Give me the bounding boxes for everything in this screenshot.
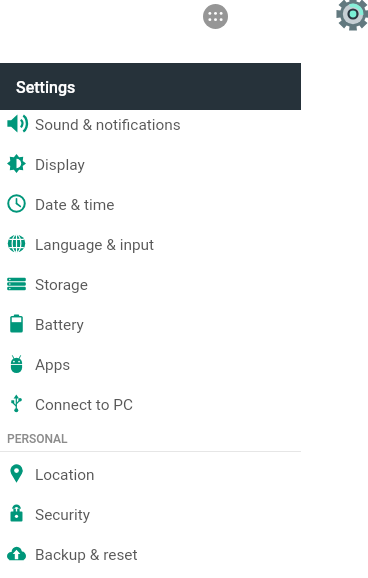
button[interactable]: Sound & notifications (0, 103, 301, 143)
staticText: Backup & reset (35, 546, 138, 564)
button[interactable]: Security (0, 493, 301, 533)
button[interactable]: Storage (0, 263, 301, 303)
staticText: Battery (35, 316, 84, 334)
button[interactable]: Apps (203, 4, 228, 29)
staticText: Settings (16, 78, 76, 97)
staticText: Storage (35, 276, 88, 294)
button[interactable]: Settings (336, 0, 368, 31)
staticText: Security (35, 506, 91, 524)
staticText: Display (35, 156, 85, 174)
button[interactable]: Location (0, 453, 301, 493)
staticText: Location (35, 466, 95, 484)
staticText: Connect to PC (35, 396, 134, 414)
button[interactable]: Apps (0, 343, 301, 383)
button[interactable]: Display (0, 143, 301, 183)
staticText: Language & input (35, 236, 155, 254)
button[interactable]: Connect to PC (0, 383, 301, 423)
button[interactable]: Backup & reset (0, 533, 301, 573)
button[interactable]: Language & input (0, 223, 301, 263)
staticText: Apps (35, 356, 71, 374)
staticText: Sound & notifications (35, 116, 181, 134)
button[interactable]: Date & time (0, 183, 301, 223)
button[interactable]: Battery (0, 303, 301, 343)
staticText: PERSONAL (7, 432, 68, 446)
staticText: Date & time (35, 196, 115, 214)
